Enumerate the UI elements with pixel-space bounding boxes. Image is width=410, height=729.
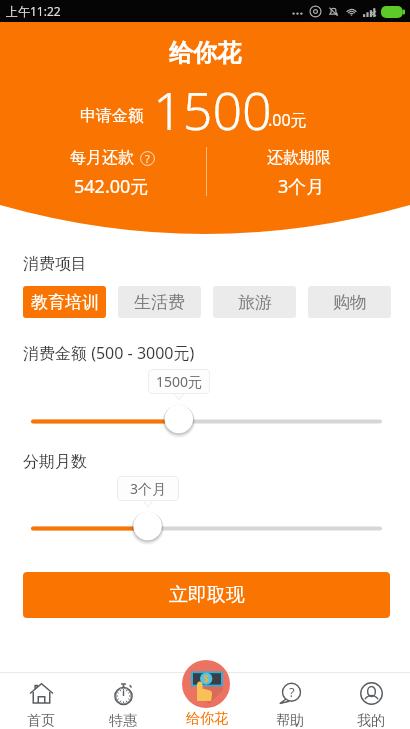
staticText: 帮助 (276, 712, 304, 729)
button[interactable]: 首页 (8, 681, 74, 729)
button[interactable]: 我的 (338, 681, 404, 729)
staticText: 生活费 (134, 292, 185, 313)
button[interactable] (0, 511, 410, 545)
staticText: 1500元 (156, 372, 203, 391)
staticText: 旅游 (238, 292, 272, 313)
staticText: ? (145, 151, 150, 166)
staticText: .00元 (268, 109, 307, 131)
staticText: ? (289, 683, 295, 701)
button[interactable]: 购物 (308, 286, 391, 318)
button[interactable]: 立即取现 (23, 572, 390, 618)
staticText: 542.00元 (74, 174, 149, 199)
staticText: 特惠 (109, 712, 137, 729)
staticText: 我的 (357, 712, 385, 729)
staticText: 给你花 (186, 710, 228, 728)
staticText: 还款期限 (267, 148, 331, 168)
staticText: 消费金额 (500 - 3000元) (23, 342, 195, 364)
button[interactable]: 教育培训 (23, 286, 106, 318)
staticText: 消费项目 (23, 254, 87, 274)
button[interactable]: ? (257, 681, 323, 729)
staticText: 购物 (333, 292, 367, 313)
staticText: 给你花 (169, 38, 241, 68)
staticText: 3个月 (278, 174, 325, 199)
staticText: 分期月数 (23, 452, 87, 472)
staticText: 教育培训 (31, 292, 99, 313)
button[interactable]: 生活费 (118, 286, 201, 318)
staticText: 上午11:22 (6, 3, 61, 19)
button[interactable]: 给你花 (182, 660, 230, 708)
button[interactable] (0, 404, 410, 438)
button[interactable]: 旅游 (213, 286, 296, 318)
staticText: 3个月 (130, 479, 167, 498)
staticText: 首页 (27, 712, 55, 729)
staticText: 每月还款 (70, 148, 134, 168)
staticText: 立即取现 (169, 583, 245, 607)
button[interactable]: 特惠 (90, 681, 156, 729)
staticText: 申请金额 (80, 106, 144, 126)
staticText: 1500 (153, 74, 272, 145)
